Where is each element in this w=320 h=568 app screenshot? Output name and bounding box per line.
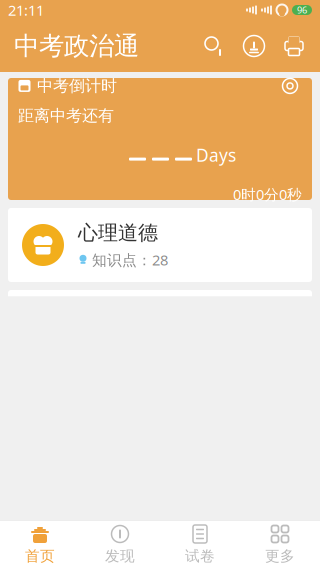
staticText: 首页 (25, 547, 55, 565)
staticText: 中考倒计时 (37, 76, 117, 96)
button[interactable]: 打印 (274, 26, 314, 66)
staticText: 96 (297, 4, 307, 16)
button[interactable]: 首页 (0, 521, 80, 568)
staticText: 知识点：28 (92, 250, 168, 269)
button[interactable]: 心理道德 (8, 208, 312, 282)
button[interactable]: 发现 (80, 521, 160, 568)
button[interactable]: 法律部分 (8, 290, 312, 364)
staticText: Days (196, 144, 236, 167)
staticText: 发现 (105, 547, 135, 565)
button[interactable]: 搜索 (194, 26, 234, 66)
staticText: 距离中考还有 (18, 106, 114, 126)
button[interactable]: 设置 (278, 74, 302, 98)
staticText: 21:11 (8, 0, 44, 20)
button[interactable]: 试卷 (160, 521, 240, 568)
button[interactable]: 更多 (240, 521, 320, 568)
button[interactable]: 下载 (234, 26, 274, 66)
staticText: 试卷 (185, 547, 215, 565)
staticText: 更多 (265, 547, 295, 565)
staticText: 0时0分0秒 (233, 185, 302, 204)
staticText: 心理道德 (78, 220, 158, 245)
staticText: 中考政治通 (14, 30, 139, 61)
